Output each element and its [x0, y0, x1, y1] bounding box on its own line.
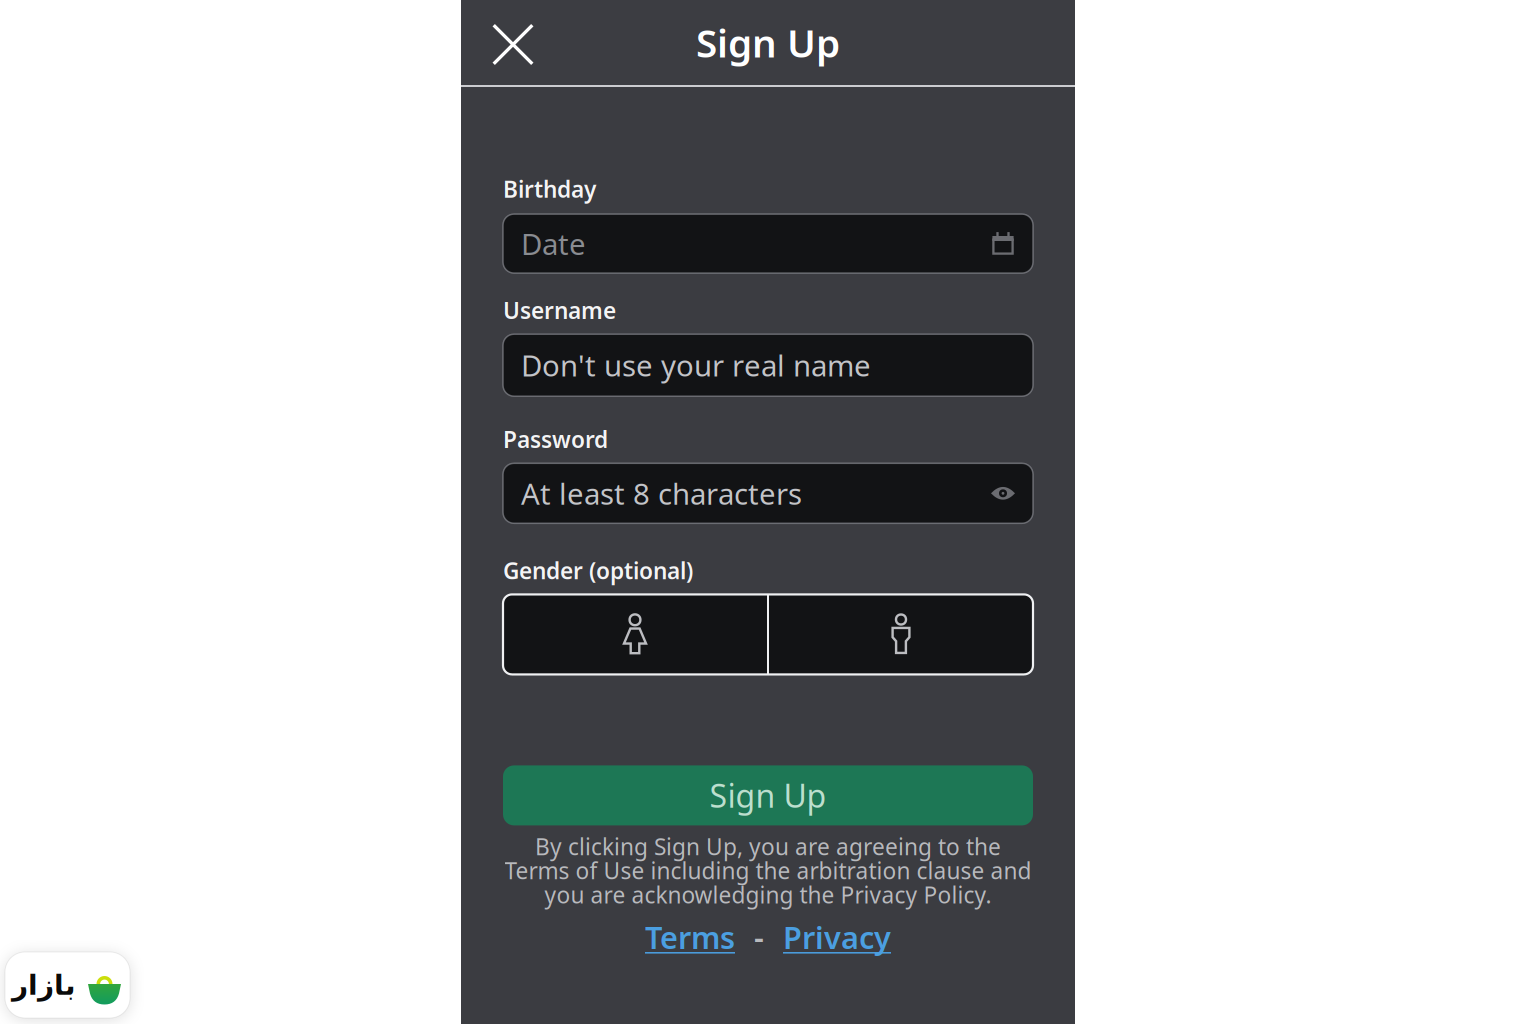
staticText: Birthday — [503, 174, 596, 204]
button[interactable]: Don't use your real name — [503, 334, 1033, 396]
staticText: you are acknowledging the Privacy Policy… — [544, 880, 991, 910]
button[interactable]: Female — [503, 594, 767, 674]
staticText: Gender (optional) — [503, 555, 693, 585]
button[interactable]: Privacy — [783, 917, 891, 957]
staticText: Sign Up — [696, 17, 840, 68]
staticText: Privacy — [783, 917, 891, 957]
staticText: Password — [503, 424, 608, 454]
staticText: - — [754, 917, 764, 957]
button[interactable]: At least 8 characters — [503, 463, 1033, 523]
staticText: Sign Up — [709, 774, 826, 817]
button[interactable]: Close — [461, 0, 551, 84]
staticText: At least 8 characters — [521, 474, 802, 513]
button[interactable]: Date — [503, 214, 1033, 273]
button[interactable]: Sign Up — [503, 765, 1033, 825]
staticText: Terms — [645, 917, 735, 957]
staticText: Terms of Use including the arbitration c… — [504, 855, 1031, 886]
button[interactable]: Terms — [645, 917, 735, 957]
staticText: Username — [503, 295, 616, 325]
button[interactable]: Male — [769, 594, 1033, 674]
staticText: Date — [521, 224, 586, 263]
staticText: بازار — [11, 969, 75, 1001]
staticText: Don't use your real name — [521, 346, 871, 385]
staticText: By clicking Sign Up, you are agreeing to… — [535, 831, 1001, 861]
